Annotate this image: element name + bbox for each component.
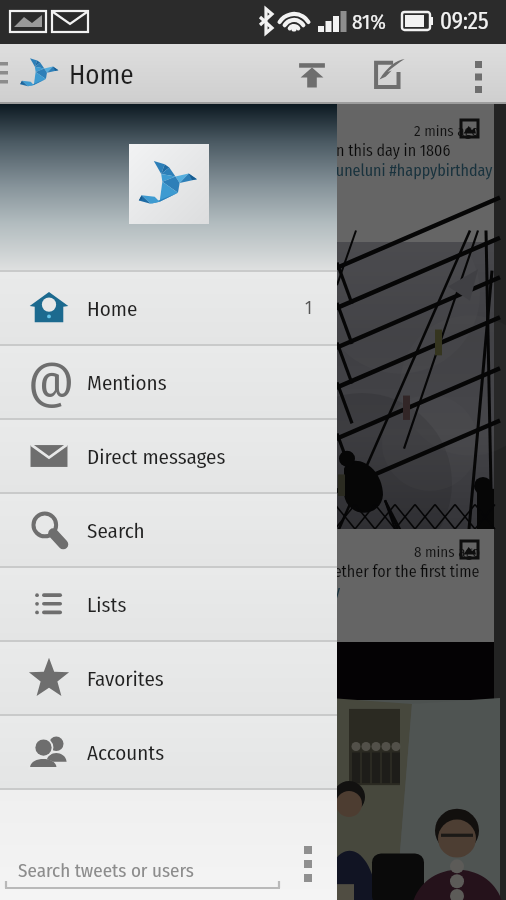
button[interactable]: Favorites (0, 642, 337, 714)
button[interactable]: Direct messages (0, 420, 337, 492)
button[interactable]: Compose tweet (363, 44, 415, 104)
button[interactable]: Accounts (0, 716, 337, 788)
button[interactable]: Search (0, 494, 337, 566)
staticText: 81% (352, 9, 386, 34)
staticText: 09:25 (440, 7, 489, 35)
button[interactable]: More options (286, 838, 330, 886)
staticText: Home (69, 59, 134, 91)
button[interactable]: Home (0, 272, 337, 344)
staticText: On this day in 1806 (326, 141, 451, 160)
staticText: 8 mins ago (414, 543, 481, 561)
staticText: together for the first time (313, 562, 480, 581)
staticText: Home (87, 296, 138, 321)
staticText: Direct messages (87, 444, 226, 469)
button[interactable]: Scroll to top (285, 44, 339, 104)
staticText: Search (87, 518, 145, 543)
staticText: 2 mins ago (414, 122, 480, 140)
staticText: 1 (305, 297, 313, 319)
staticText: Search tweets or users (18, 859, 194, 882)
button[interactable]: Lists (0, 568, 337, 640)
staticText: y (333, 582, 341, 601)
button[interactable]: More options (456, 44, 500, 104)
staticText: Mentions (87, 370, 167, 395)
staticText: @uneluni #happybirthday (321, 161, 493, 180)
staticText: @ (28, 350, 70, 410)
staticText: Accounts (87, 740, 165, 765)
button[interactable]: @ (0, 346, 337, 418)
staticText: Lists (87, 592, 127, 617)
staticText: Favorites (87, 666, 164, 691)
